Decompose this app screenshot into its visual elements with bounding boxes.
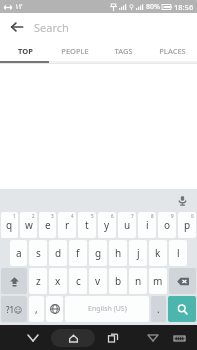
button[interactable]: Symbols [1,296,27,322]
button[interactable]: l [169,240,187,266]
button[interactable]: f [69,240,87,266]
staticText: PLACES [159,46,186,56]
staticText: 4 [71,213,74,219]
button[interactable]: Shift [1,268,27,294]
button[interactable]: s [29,240,47,266]
button[interactable]: e [39,212,56,238]
button[interactable]: j [129,240,147,266]
staticText: j [137,246,140,260]
button[interactable]: x [49,268,67,294]
staticText: f [76,246,80,260]
staticText: r [65,218,70,232]
button[interactable]: k [149,240,167,266]
staticText: v [95,274,101,288]
staticText: u [124,218,131,232]
staticText: g [95,246,102,260]
button[interactable]: PEOPLE [50,41,99,61]
button[interactable]: Backspace [169,268,196,294]
staticText: h [115,246,122,260]
staticText: 1 [13,213,16,219]
button[interactable]: c [69,268,87,294]
staticText: 3 [51,213,54,219]
staticText: Search [34,20,69,35]
button[interactable]: g [89,240,107,266]
staticText: TOP [18,46,33,56]
button[interactable]: m [149,268,167,294]
button[interactable]: a [10,240,27,266]
button[interactable]: Search [168,296,196,322]
staticText: t [85,218,89,232]
button[interactable]: PLACES [148,41,197,61]
staticText: ١٢ [15,3,23,11]
button[interactable]: u [118,212,136,238]
button[interactable]: o [158,212,176,238]
staticText: s [36,246,41,260]
staticText: d [55,246,62,260]
button[interactable]: Hide keyboard [19,328,47,348]
button[interactable]: h [109,240,127,266]
staticText: . [157,302,160,316]
button[interactable]: b [109,268,127,294]
button[interactable]: p [178,212,196,238]
button[interactable]: v [89,268,107,294]
staticText: q [6,218,13,232]
button[interactable]: Collapse [141,328,165,348]
staticText: l [177,246,180,260]
button[interactable]: Language [46,296,63,322]
button[interactable]: w [20,212,37,238]
staticText: 0 [191,213,194,219]
button[interactable]: Voice input [175,193,189,207]
staticText: i [146,218,149,232]
button[interactable]: z [29,268,47,294]
button[interactable]: Switch keyboard [167,328,191,348]
staticText: 18:56 [174,2,194,12]
button[interactable]: , [29,296,44,322]
staticText: e [45,218,51,232]
button[interactable]: t [78,212,96,238]
staticText: PEOPLE [61,46,89,56]
staticText: b [115,274,122,288]
button[interactable]: TAGS [99,41,148,61]
button[interactable]: q [1,212,18,238]
staticText: z [36,274,41,288]
staticText: p [184,218,191,232]
staticText: English (US) [88,304,127,314]
button[interactable]: English (US) [65,296,149,322]
staticText: o [164,218,171,232]
button[interactable]: Recent apps [99,328,127,348]
staticText: 7 [131,213,134,219]
staticText: x [55,274,61,288]
staticText: 5 [91,213,94,219]
staticText: 80% [146,2,160,12]
button[interactable]: Home [51,329,95,347]
button[interactable]: TOP [0,41,50,61]
staticText: 6 [111,213,114,219]
staticText: m [153,274,163,288]
staticText: k [155,246,161,260]
staticText: w [25,218,33,232]
staticText: n [135,274,142,288]
staticText: y [104,218,110,232]
staticText: a [16,246,22,260]
button[interactable]: i [138,212,156,238]
staticText: 2 [32,213,35,219]
button[interactable]: d [49,240,67,266]
button[interactable]: r [58,212,76,238]
staticText: , [35,302,38,316]
button[interactable]: Back [0,13,34,41]
staticText: ?1☺ [6,304,23,315]
staticText: c [76,274,81,288]
button[interactable]: . [151,296,166,322]
staticText: TAGS [114,46,133,56]
button[interactable]: n [129,268,147,294]
staticText: 8 [151,213,154,219]
button[interactable]: y [98,212,116,238]
staticText: 9 [171,213,174,219]
